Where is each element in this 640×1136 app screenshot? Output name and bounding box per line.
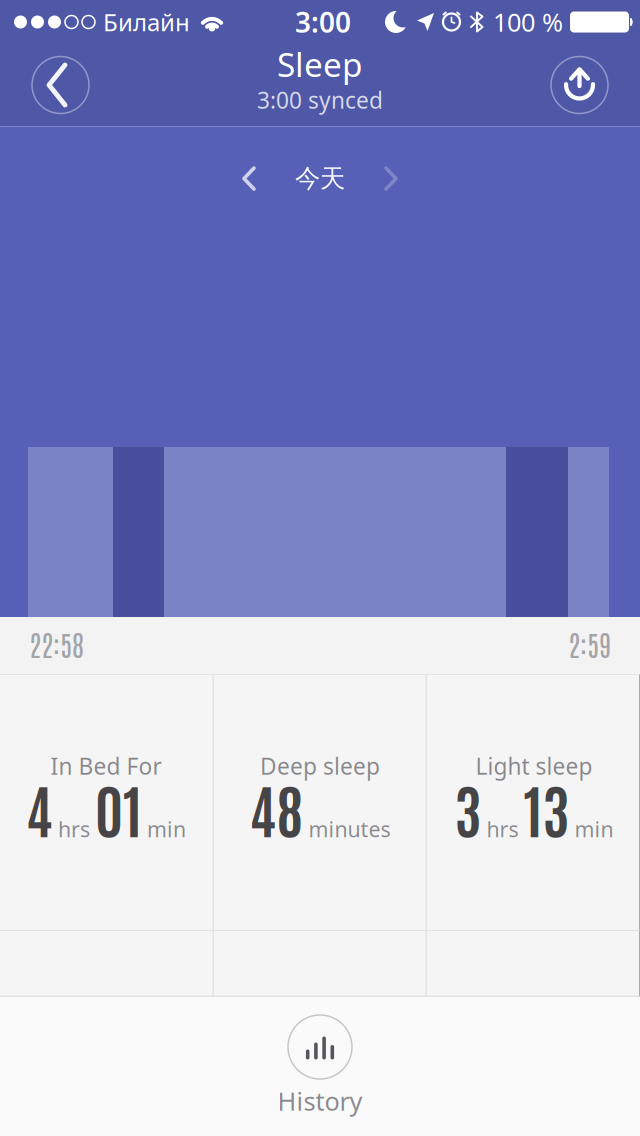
- staticText: History: [277, 1084, 362, 1118]
- staticText: hrs: [486, 815, 518, 843]
- staticText: 100 %: [493, 5, 563, 39]
- button[interactable]: History: [277, 1015, 362, 1118]
- staticText: 13: [523, 771, 569, 845]
- button[interactable]: [551, 56, 608, 113]
- staticText: minutes: [308, 815, 390, 843]
- staticText: Deep sleep: [260, 751, 380, 781]
- button[interactable]: [242, 166, 256, 191]
- staticText: 3: [454, 771, 481, 845]
- staticText: min: [147, 815, 186, 843]
- staticText: Билайн: [103, 6, 190, 38]
- button[interactable]: [32, 56, 89, 113]
- staticText: hrs: [58, 815, 90, 843]
- staticText: min: [574, 815, 613, 843]
- staticText: 2:59: [568, 625, 611, 662]
- staticText: 4: [26, 771, 53, 845]
- button[interactable]: [384, 166, 398, 191]
- staticText: Sleep: [277, 42, 363, 86]
- staticText: 48: [249, 771, 303, 845]
- button[interactable]: 今天: [295, 163, 345, 194]
- staticText: 3:00 synced: [257, 85, 383, 115]
- staticText: Light sleep: [475, 751, 592, 781]
- staticText: 3:00: [295, 3, 351, 41]
- staticText: 今天: [295, 163, 345, 194]
- staticText: In Bed For: [50, 751, 161, 781]
- staticText: 01: [95, 771, 142, 845]
- staticText: 22:58: [29, 625, 84, 662]
